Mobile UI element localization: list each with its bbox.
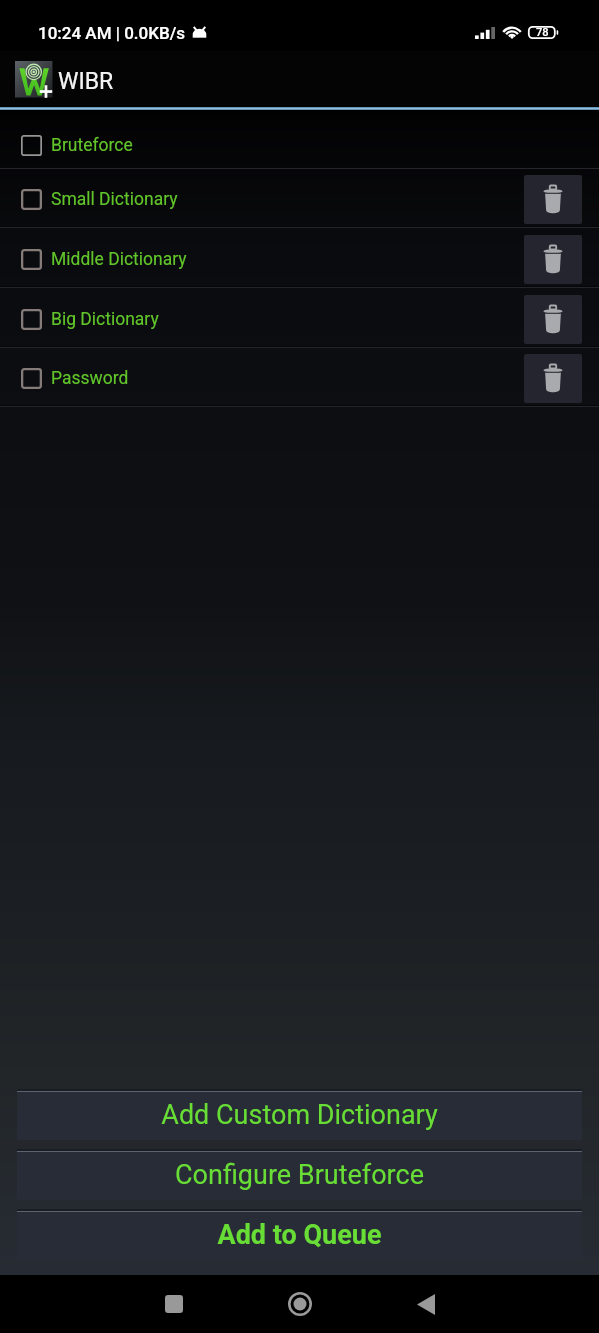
button[interactable]: Bruteforce [0, 110, 599, 167]
staticText: Small Dictionary [51, 189, 178, 210]
staticText: Middle Dictionary [51, 249, 187, 270]
button[interactable]: Recents [129, 1275, 219, 1333]
staticText: Add to Queue [217, 1219, 382, 1251]
staticText: Configure Bruteforce [175, 1159, 424, 1191]
button[interactable]: Configure Bruteforce [17, 1149, 582, 1200]
staticText: WIBR [58, 68, 114, 95]
button[interactable]: Delete [524, 175, 582, 224]
button[interactable]: Middle Dictionary [0, 228, 599, 286]
button[interactable]: Big Dictionary [0, 288, 599, 346]
staticText: Add Custom Dictionary [161, 1099, 438, 1131]
staticText: Big Dictionary [51, 309, 159, 330]
button[interactable]: Add to Queue [17, 1209, 582, 1260]
button[interactable]: Home [255, 1275, 345, 1333]
button[interactable]: Delete [524, 354, 582, 403]
button[interactable]: Back [381, 1275, 471, 1333]
button[interactable]: Add Custom Dictionary [17, 1089, 582, 1140]
button[interactable]: Delete [524, 295, 582, 344]
staticText: 10:24 AM | 0.0KB/s [38, 23, 186, 43]
staticText: Bruteforce [51, 135, 133, 156]
button[interactable]: Small Dictionary [0, 169, 599, 226]
button[interactable]: Password [0, 348, 599, 405]
staticText: Password [51, 368, 129, 389]
button[interactable]: Delete [524, 235, 582, 284]
staticText: 78 [536, 26, 549, 39]
